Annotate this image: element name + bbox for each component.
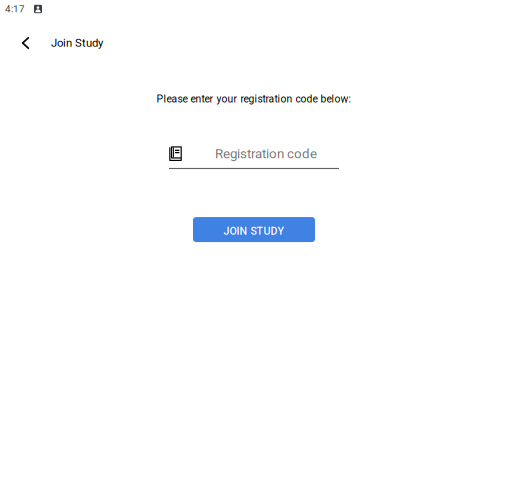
staticText: JOIN STUDY xyxy=(223,225,284,237)
staticText: Please enter your registration code belo… xyxy=(156,93,351,105)
button[interactable]: Back xyxy=(14,30,36,56)
staticText: 4:17 xyxy=(5,3,25,15)
button[interactable]: JOIN STUDY xyxy=(193,217,315,242)
staticText: Join Study xyxy=(51,36,103,50)
button[interactable]: Registration code xyxy=(169,146,339,169)
staticText: Registration code xyxy=(215,146,317,161)
